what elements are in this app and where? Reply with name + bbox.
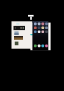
button[interactable]: Product artwork xyxy=(0,0,64,91)
